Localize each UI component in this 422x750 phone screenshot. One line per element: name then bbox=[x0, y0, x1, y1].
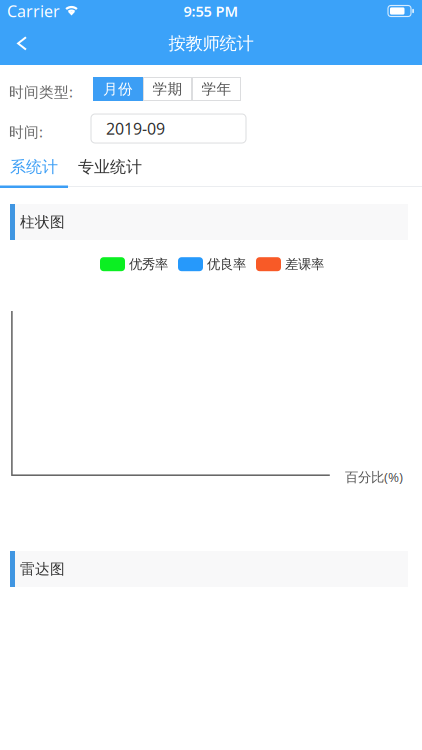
staticText: 学年 bbox=[201, 80, 231, 98]
staticText: 柱状图 bbox=[20, 213, 65, 231]
staticText: 百分比(%) bbox=[345, 468, 403, 486]
staticText: 2019-09 bbox=[106, 118, 165, 139]
staticText: Carrier bbox=[7, 0, 60, 22]
button[interactable]: 学期 bbox=[143, 77, 192, 101]
button[interactable]: 系统计 bbox=[0, 153, 68, 188]
staticText: 差课率 bbox=[285, 256, 324, 272]
staticText: 优良率 bbox=[207, 256, 246, 272]
staticText: 月份 bbox=[103, 80, 133, 98]
staticText: 学期 bbox=[152, 80, 182, 98]
staticText: 系统计 bbox=[10, 157, 58, 177]
button[interactable]: Back bbox=[0, 22, 44, 65]
staticText: 优秀率 bbox=[129, 256, 168, 272]
staticText: 按教师统计 bbox=[168, 33, 253, 54]
button[interactable]: 专业统计 bbox=[68, 153, 152, 188]
staticText: 时间类型: bbox=[9, 82, 73, 101]
staticText: 专业统计 bbox=[78, 157, 142, 177]
staticText: 雷达图 bbox=[20, 560, 65, 578]
staticText: 时间: bbox=[9, 122, 43, 141]
staticText: 9:55 PM bbox=[183, 1, 238, 21]
button[interactable]: 月份 bbox=[93, 77, 143, 101]
button[interactable]: 学年 bbox=[192, 77, 241, 101]
button[interactable]: 2019-09 bbox=[91, 114, 246, 143]
